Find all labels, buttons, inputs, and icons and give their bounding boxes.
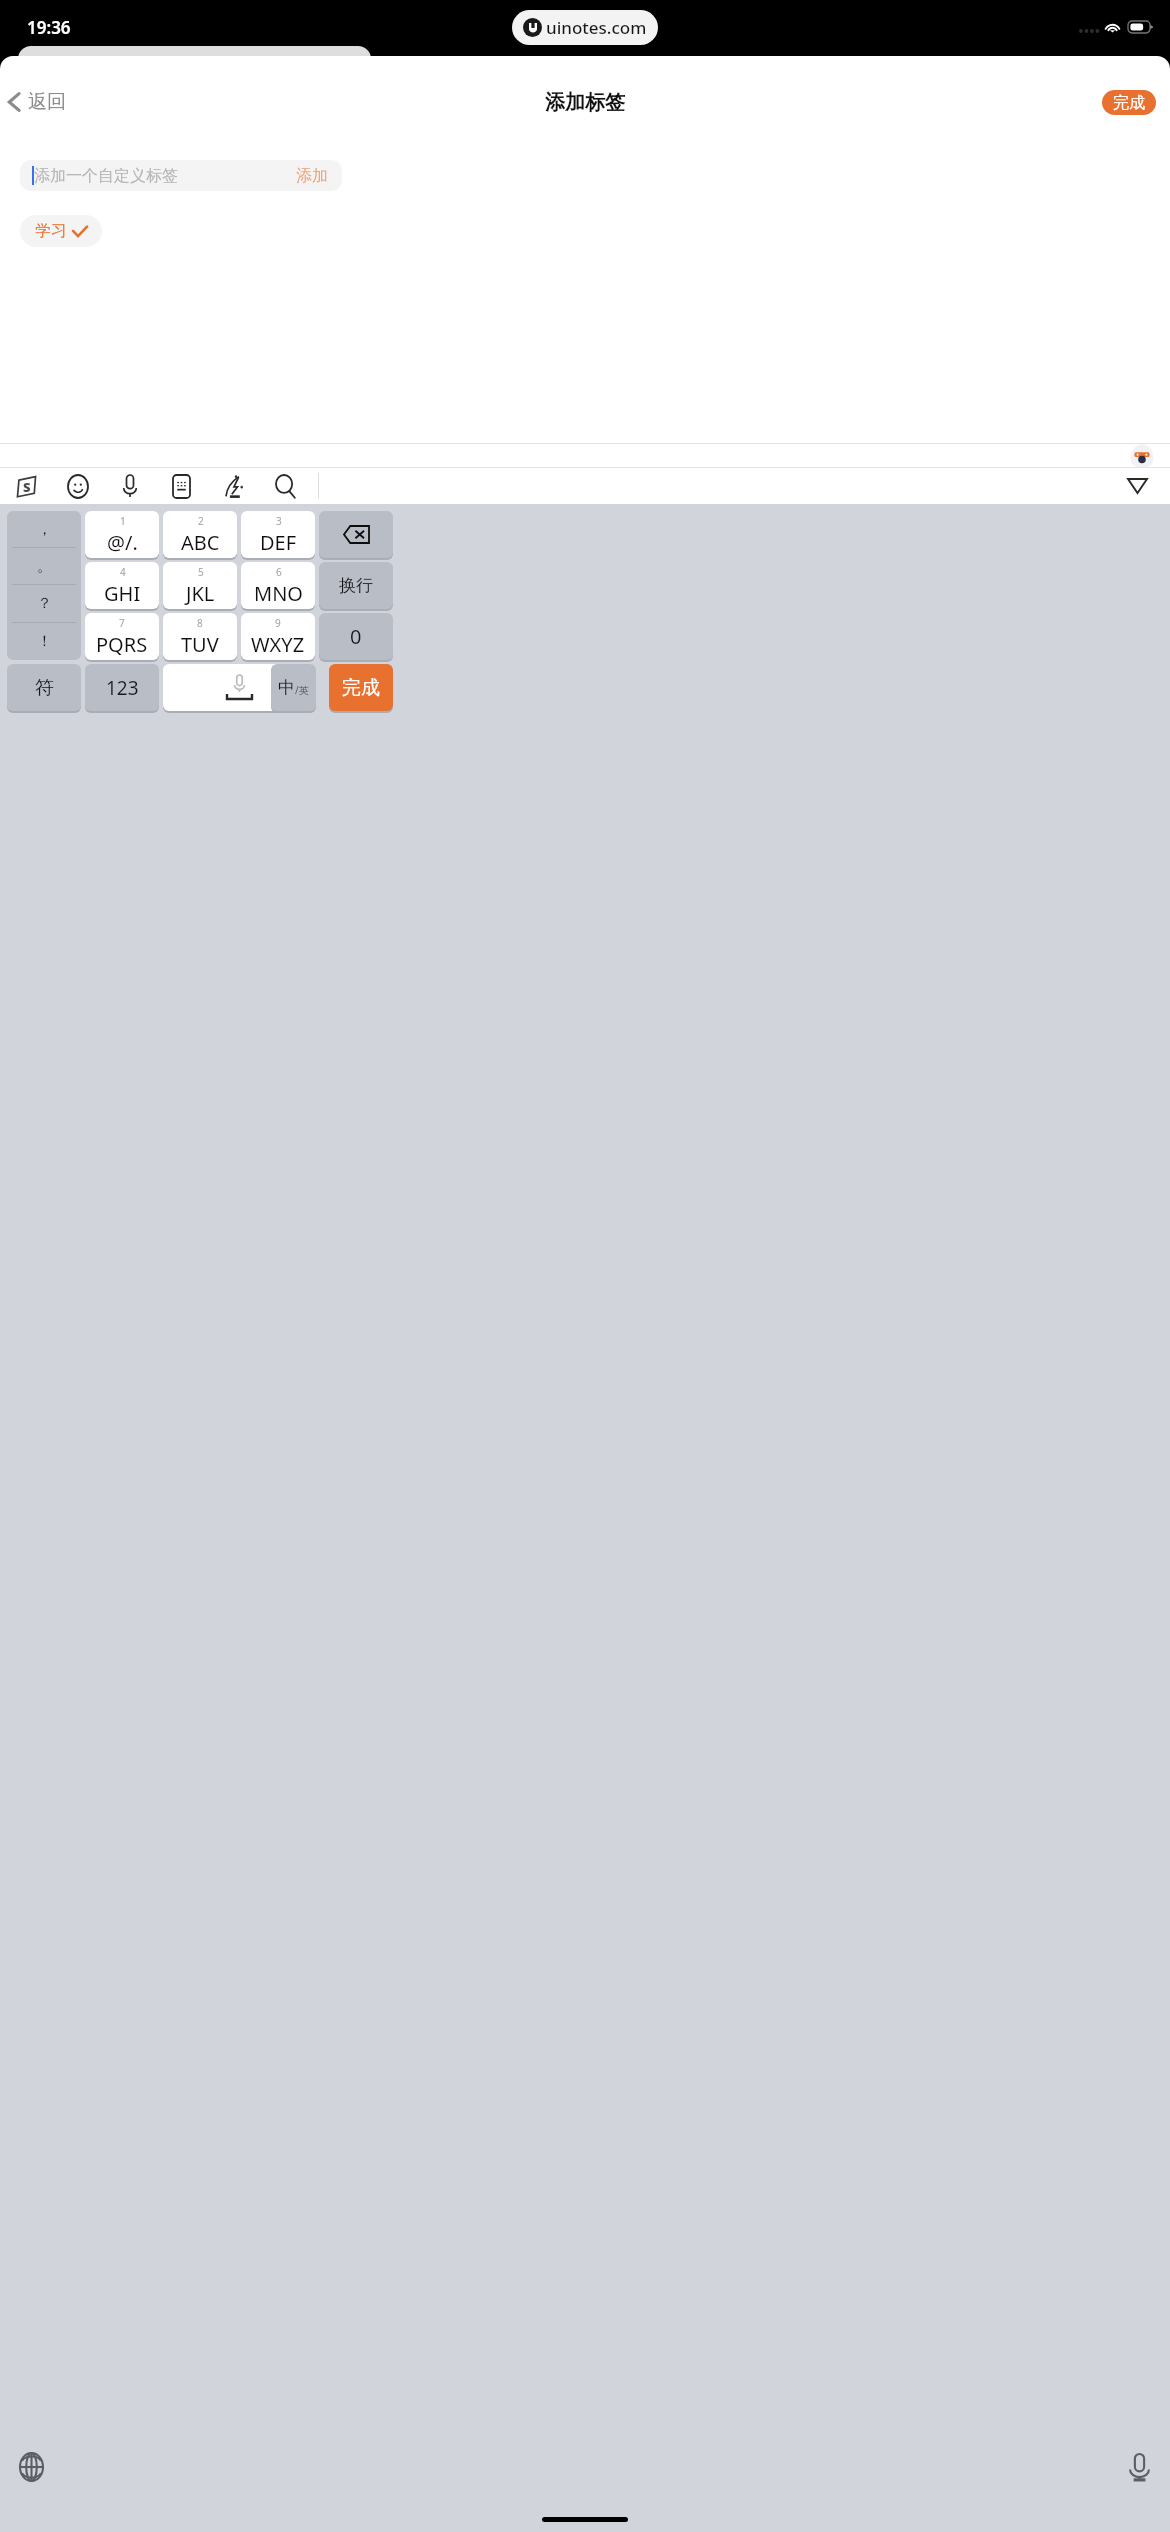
staticText: 19:36 [27, 16, 71, 39]
staticText: 8 [197, 616, 203, 630]
staticText: S [23, 478, 31, 496]
staticText: JKL [186, 580, 215, 607]
button[interactable]: 0 [319, 613, 393, 660]
button[interactable]: Sogou [9, 469, 43, 503]
staticText: ABC [181, 529, 220, 556]
button[interactable]: 换行 [319, 562, 393, 609]
staticText: ！ [37, 632, 52, 651]
button[interactable]: Search [268, 469, 302, 503]
button[interactable]: Switch language [13, 2449, 49, 2485]
staticText: 。 [37, 557, 52, 576]
staticText: GHI [104, 580, 141, 607]
button[interactable]: 添加 [282, 161, 342, 191]
staticText: @/. [107, 529, 138, 556]
staticText: WXYZ [251, 631, 305, 658]
staticText: PQRS [96, 631, 148, 658]
button[interactable]: 123 [85, 664, 159, 711]
button[interactable]: 符 [7, 664, 81, 711]
button[interactable]: 返回 [0, 82, 78, 122]
staticText: 123 [106, 675, 139, 701]
button[interactable]: 3 [241, 511, 315, 558]
button[interactable]: 完成 [329, 664, 393, 711]
staticText: 1 [120, 514, 126, 528]
staticText: 0 [350, 623, 362, 650]
staticText: 完成 [342, 676, 380, 700]
button[interactable]: 7 [85, 613, 159, 660]
button[interactable]: Backspace [319, 511, 393, 558]
staticText: 学习 [35, 221, 67, 241]
staticText: ？ [37, 594, 52, 613]
button[interactable]: 1 [85, 511, 159, 558]
staticText: TUV [181, 631, 219, 658]
staticText: 7 [119, 616, 125, 630]
button[interactable]: Hide keyboard [1120, 469, 1154, 503]
button[interactable]: Handwriting [216, 469, 250, 503]
button[interactable]: Emoji [61, 469, 95, 503]
staticText: ， [37, 520, 52, 539]
staticText: MNO [254, 580, 303, 607]
button[interactable]: Dictation [1121, 2449, 1157, 2485]
button[interactable]: Assistant [1128, 443, 1156, 468]
staticText: 中 [278, 677, 295, 698]
button[interactable]: Voice input [113, 469, 147, 503]
staticText: 返回 [28, 90, 66, 114]
button[interactable]: 8 [163, 613, 237, 660]
staticText: 符 [35, 676, 54, 700]
staticText: 添加标签 [545, 90, 625, 115]
staticText: 9 [275, 616, 281, 630]
button[interactable]: 9 [241, 613, 315, 660]
button[interactable]: Space [163, 664, 315, 711]
staticText: uinotes.com [546, 16, 647, 39]
button[interactable]: 添加一个自定义标签 [20, 160, 342, 191]
staticText: /英 [295, 683, 309, 697]
button[interactable]: 完成 [1102, 90, 1156, 115]
button[interactable]: 6 [241, 562, 315, 609]
button[interactable]: 学习 [20, 215, 102, 247]
staticText: 换行 [339, 575, 373, 596]
staticText: 2 [198, 514, 204, 528]
staticText: 添加 [296, 166, 328, 186]
button[interactable]: 4 [85, 562, 159, 609]
staticText: 4 [120, 565, 126, 579]
staticText: 6 [276, 565, 282, 579]
staticText: 3 [276, 514, 282, 528]
staticText: DEF [260, 529, 297, 556]
staticText: 5 [198, 565, 204, 579]
button[interactable]: Keyboard layout [164, 469, 198, 503]
button[interactable]: 2 [163, 511, 237, 558]
staticText: 完成 [1113, 93, 1145, 113]
staticText: 添加一个自定义标签 [34, 166, 178, 186]
button[interactable]: 5 [163, 562, 237, 609]
button[interactable]: ， [7, 511, 81, 660]
button[interactable]: 中 [271, 664, 316, 711]
